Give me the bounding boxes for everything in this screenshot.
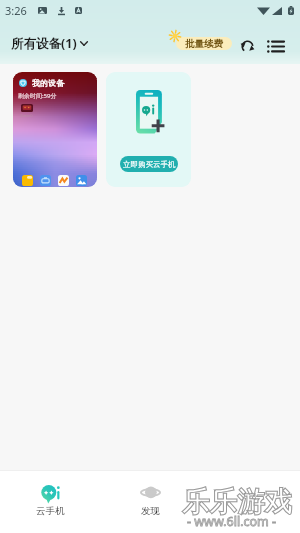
staticText: 发现 bbox=[141, 505, 160, 517]
staticText: 云手机 bbox=[36, 505, 65, 517]
button[interactable]: 批量续费 bbox=[176, 37, 232, 50]
button[interactable]: 立即购买云手机 bbox=[120, 156, 178, 172]
button[interactable]: Refresh bbox=[236, 35, 258, 57]
button[interactable]: 发现 bbox=[100, 479, 200, 525]
button[interactable]: 立即购买云手机 bbox=[106, 72, 191, 187]
staticText: 3:26 bbox=[5, 3, 27, 18]
staticText: 我的设备 bbox=[32, 78, 64, 88]
staticText: 乐乐游戏 bbox=[182, 485, 292, 520]
button[interactable]: 所有设备(1) bbox=[11, 35, 92, 52]
staticText: 所有设备(1) bbox=[11, 35, 77, 52]
staticText: 批量续费 bbox=[185, 38, 223, 50]
staticText: 剩余时间:59分 bbox=[18, 92, 57, 100]
staticText: - www.6ll.com - bbox=[187, 513, 277, 530]
button[interactable]: List view bbox=[264, 35, 286, 57]
button[interactable]: 我的设备 bbox=[13, 72, 97, 187]
staticText: 应用中心 bbox=[20, 114, 33, 118]
button[interactable]: 云手机 bbox=[0, 479, 100, 525]
staticText: 立即购买云手机 bbox=[123, 160, 176, 169]
